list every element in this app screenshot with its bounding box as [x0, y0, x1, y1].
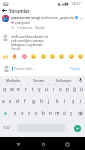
button[interactable]: Emoji: [49, 53, 55, 59]
staticText: d: [16, 98, 19, 105]
button[interactable]: Paylaş: [69, 66, 82, 71]
button[interactable]: Emoji: [40, 53, 46, 59]
button[interactable]: Send: [74, 125, 81, 132]
button[interactable]: c: [26, 107, 33, 120]
button[interactable]: Merhaba: [0, 76, 26, 83]
button[interactable]: d: [14, 95, 21, 107]
staticText: çok güzel: [15, 20, 30, 25]
button[interactable]: g: [29, 95, 37, 107]
button[interactable]: ğ: [71, 83, 78, 95]
staticText: yazarcanim_sevgi: [11, 15, 40, 20]
button[interactable]: Kullanıyor: [51, 76, 76, 83]
button[interactable]: m: [54, 107, 61, 120]
button[interactable]: ı: [50, 83, 57, 95]
button[interactable]: e: [15, 83, 22, 95]
button[interactable]: z: [11, 107, 19, 120]
button[interactable]: ,: [11, 123, 17, 133]
staticText: u: [45, 86, 48, 93]
button[interactable]: w: [8, 83, 15, 95]
staticText: ş: [72, 98, 75, 105]
button[interactable]: Voice input: [76, 76, 85, 83]
button[interactable]: ö: [61, 107, 68, 120]
staticText: 3: [20, 83, 22, 86]
staticText: 4: [27, 83, 29, 86]
button[interactable]: Recent apps: [61, 138, 73, 150]
staticText: t: [32, 86, 34, 93]
staticText: q: [3, 86, 6, 93]
staticText: 0: [69, 83, 71, 86]
button[interactable]: Emoji: [58, 53, 64, 59]
staticText: Kullanıyor: [56, 78, 72, 82]
button[interactable]: Emoji: [11, 53, 17, 59]
staticText: h: [40, 98, 43, 105]
button[interactable]: y: [36, 83, 43, 95]
staticText: ı: [53, 86, 55, 93]
staticText: r: [25, 86, 27, 93]
button[interactable]: Like: [79, 16, 83, 20]
staticText: .: [67, 126, 69, 131]
button[interactable]: Backspace: [75, 107, 85, 120]
staticText: 7: [48, 83, 50, 86]
staticText: muhtesem_paylasim: [41, 15, 74, 20]
staticText: w: [10, 86, 14, 93]
button[interactable]: l: [61, 95, 69, 107]
staticText: m: [55, 110, 60, 117]
staticText: l: [64, 98, 66, 105]
staticText: y: [38, 86, 41, 93]
button[interactable]: f: [21, 95, 29, 107]
staticText: ü: [80, 86, 83, 93]
button[interactable]: mefLuzeliSonuAnsel en çok sevdiğim sanat…: [0, 34, 85, 51]
button[interactable]: u: [43, 83, 50, 95]
button[interactable]: ç: [68, 107, 75, 120]
button[interactable]: r: [22, 83, 29, 95]
button[interactable]: Emoji: [2, 53, 8, 59]
button[interactable]: Back: [12, 138, 24, 150]
button[interactable]: ş: [69, 95, 77, 107]
button[interactable]: x: [19, 107, 26, 120]
staticText: n: [49, 110, 52, 117]
button[interactable]: Emoji: [77, 53, 83, 59]
staticText: z: [14, 110, 17, 117]
button[interactable]: yazarcanim_sevgi: [0, 15, 85, 30]
staticText: 2: [13, 83, 15, 86]
button[interactable]: b: [40, 107, 47, 120]
staticText: s: [9, 98, 12, 105]
button[interactable]: Shift: [0, 107, 11, 120]
button[interactable]: s: [7, 95, 14, 107]
button[interactable]: Back: [0, 7, 9, 14]
staticText: 1 beğenme: [17, 26, 33, 30]
staticText: 6: [41, 83, 43, 86]
button[interactable]: n: [47, 107, 54, 120]
button[interactable]: ?123: [1, 123, 11, 133]
staticText: mefLuzeliSonuAnsel en çok sevdiğim sanat…: [11, 34, 50, 47]
staticText: c: [28, 110, 31, 117]
button[interactable]: t: [29, 83, 36, 95]
button[interactable]: k: [53, 95, 61, 107]
button[interactable]: .: [65, 123, 71, 133]
button[interactable]: Emoji: [21, 53, 27, 59]
button[interactable]: a: [0, 95, 7, 107]
button[interactable]: Emoji: [30, 53, 36, 59]
button[interactable]: v: [33, 107, 40, 120]
staticText: k: [56, 98, 59, 105]
staticText: x: [21, 110, 24, 117]
staticText: ,: [13, 126, 15, 131]
staticText: Tamam: [33, 78, 45, 82]
button[interactable]: i: [77, 95, 85, 107]
button[interactable]: h: [37, 95, 45, 107]
button[interactable]: p: [64, 83, 71, 95]
staticText: Merhaba: [6, 78, 20, 82]
staticText: Yanıtla: [35, 26, 45, 30]
staticText: f: [24, 98, 26, 105]
button[interactable]: q: [0, 83, 8, 95]
button[interactable]: Emoji: [68, 53, 74, 59]
staticText: a: [2, 98, 5, 105]
button[interactable]: Home: [37, 138, 49, 150]
staticText: 1: [6, 83, 8, 86]
button[interactable]: ü: [78, 83, 85, 95]
button[interactable]: Tamam: [26, 76, 51, 83]
button[interactable]: o: [57, 83, 64, 95]
staticText: Yorumlar: [9, 8, 30, 14]
button[interactable]: j: [45, 95, 53, 107]
